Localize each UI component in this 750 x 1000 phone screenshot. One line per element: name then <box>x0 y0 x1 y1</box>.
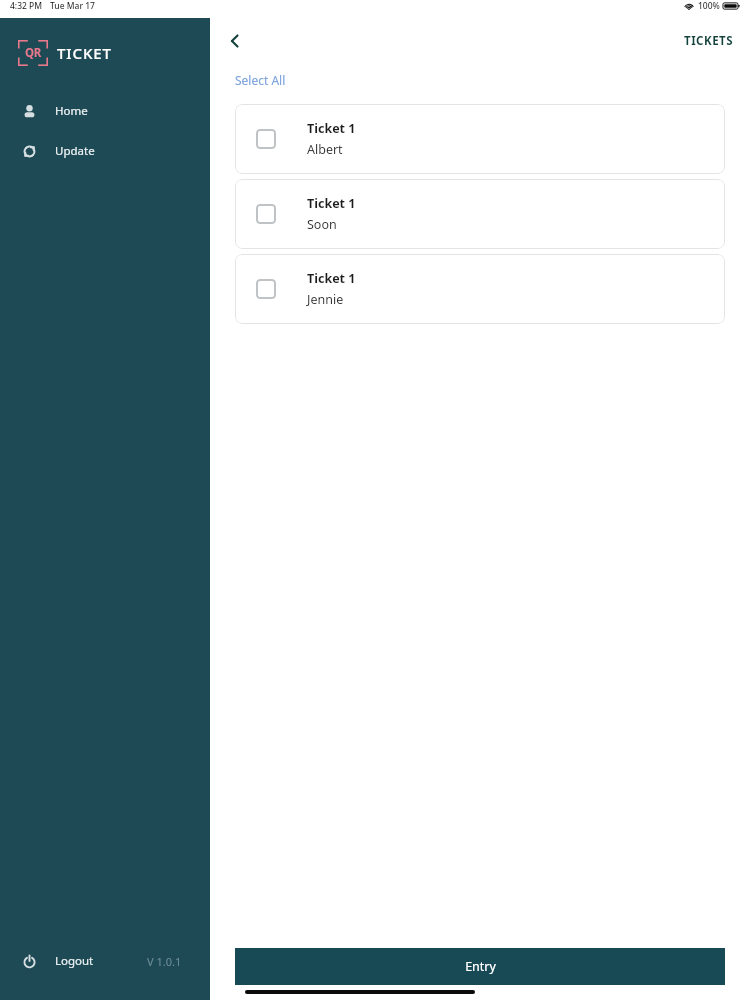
button[interactable]: Back <box>218 24 252 58</box>
staticText: Home <box>55 103 88 119</box>
staticText: Soon <box>307 216 337 233</box>
staticText: TICKETS <box>684 33 734 49</box>
staticText: QR <box>25 45 42 61</box>
button[interactable]: Home <box>0 96 210 126</box>
button[interactable]: Select Ticket 1 Albert <box>256 129 276 149</box>
staticText: Ticket 1 <box>307 120 356 137</box>
button[interactable]: Select Ticket 1 Soon <box>256 204 276 224</box>
staticText: 100% <box>698 0 720 12</box>
staticText: Ticket 1 <box>307 270 356 287</box>
button[interactable]: Select Ticket 1 Jennie <box>256 279 276 299</box>
staticText: Jennie <box>307 291 344 308</box>
button[interactable]: TICKETS <box>668 25 750 57</box>
staticText: 4:32 PM <box>10 0 43 12</box>
button[interactable]: Select Ticket 1 Jennie <box>235 254 725 324</box>
staticText: V 1.0.1 <box>147 954 182 969</box>
staticText: Ticket 1 <box>307 195 356 212</box>
button[interactable]: Entry <box>235 948 725 985</box>
button[interactable]: Select Ticket 1 Soon <box>235 179 725 249</box>
button[interactable]: QR <box>0 34 210 72</box>
button[interactable]: Select Ticket 1 Albert <box>235 104 725 174</box>
staticText: Albert <box>307 141 343 158</box>
button[interactable]: Logout <box>0 947 100 975</box>
staticText: Tue Mar 17 <box>50 0 95 12</box>
staticText: TICKET <box>57 43 112 63</box>
staticText: Entry <box>465 958 496 975</box>
button[interactable]: Select All <box>227 66 294 94</box>
staticText: Update <box>55 143 95 159</box>
staticText: Logout <box>55 953 94 969</box>
staticText: Select All <box>235 72 286 88</box>
button[interactable]: Update <box>0 136 210 166</box>
